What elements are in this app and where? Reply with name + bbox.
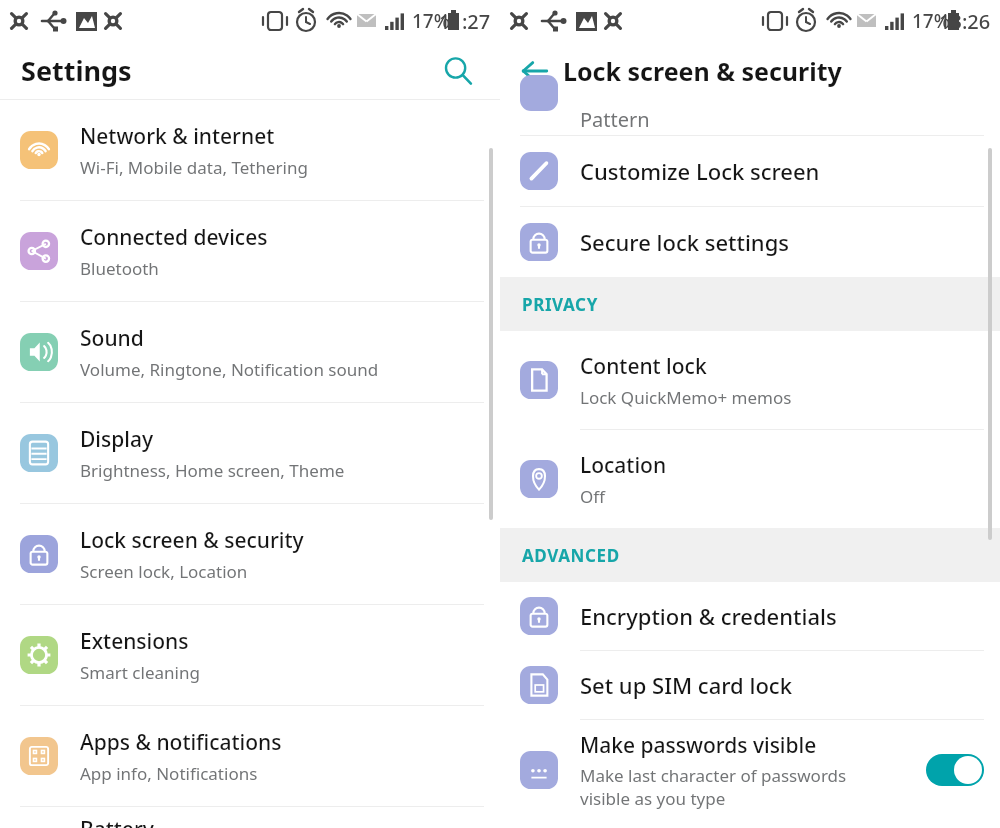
staticText: Content lock	[580, 352, 707, 381]
button[interactable]: Back	[514, 50, 556, 92]
staticText: Pattern	[580, 106, 650, 133]
button[interactable]	[500, 99, 1000, 135]
button[interactable]: Apps & notifications	[0, 706, 500, 806]
button[interactable]: Make passwords visible	[500, 720, 1000, 820]
staticText: Location	[580, 451, 667, 480]
button[interactable]: Sound	[0, 302, 500, 402]
button[interactable]: Location	[500, 430, 1000, 528]
staticText: Settings	[21, 52, 132, 89]
staticText: Screen lock, Location	[80, 560, 248, 583]
staticText: Sound	[80, 324, 144, 353]
staticText: Make last character of passwords	[580, 764, 847, 787]
button[interactable]: Display	[0, 403, 500, 503]
staticText: Lock screen & security	[563, 54, 842, 88]
staticText: Lock screen & security	[80, 526, 304, 555]
staticText: Bluetooth	[80, 257, 159, 280]
staticText: Brightness, Home screen, Theme	[80, 459, 345, 482]
button[interactable]: Connected devices	[0, 201, 500, 301]
staticText: 17%	[412, 8, 450, 34]
staticText: Make passwords visible	[580, 731, 817, 760]
button[interactable]: Make passwords visible toggle	[926, 754, 984, 786]
staticText: App info, Notifications	[80, 762, 258, 785]
button[interactable]: Set up SIM card lock	[500, 651, 1000, 719]
staticText: Extensions	[80, 627, 189, 656]
staticText: Display	[80, 425, 154, 454]
staticText: visible as you type	[580, 787, 726, 810]
staticText: 11:27	[439, 8, 491, 35]
staticText: Battery	[80, 815, 154, 828]
button[interactable]: Network & internet	[0, 100, 500, 200]
staticText: 17%	[912, 8, 950, 34]
button[interactable]: Encryption & credentials	[500, 582, 1000, 650]
staticText: Encryption & credentials	[580, 601, 837, 631]
button[interactable]: Customize Lock screen	[500, 136, 1000, 206]
staticText: Apps & notifications	[80, 728, 282, 757]
button[interactable]: Battery	[0, 807, 500, 828]
staticText: Network & internet	[80, 122, 275, 151]
staticText: PRIVACY	[522, 293, 598, 316]
staticText: 13:26	[939, 8, 991, 35]
button[interactable]: Extensions	[0, 605, 500, 705]
staticText: Wi-Fi, Mobile data, Tethering	[80, 156, 308, 179]
staticText: ADVANCED	[522, 544, 620, 567]
staticText: Customize Lock screen	[580, 156, 820, 186]
staticText: Volume, Ringtone, Notification sound	[80, 358, 379, 381]
staticText: Secure lock settings	[580, 227, 789, 257]
button[interactable]: Lock screen & security	[0, 504, 500, 604]
button[interactable]: Secure lock settings	[500, 207, 1000, 277]
staticText: Connected devices	[80, 223, 268, 252]
staticText: Smart cleaning	[80, 661, 200, 684]
button[interactable]: Content lock	[500, 331, 1000, 429]
staticText: Lock QuickMemo+ memos	[580, 386, 792, 409]
staticText: Off	[580, 485, 605, 508]
staticText: Set up SIM card lock	[580, 670, 792, 700]
button[interactable]: Search	[436, 49, 480, 93]
